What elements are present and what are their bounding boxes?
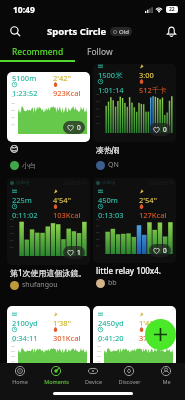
button[interactable]: Device xyxy=(76,366,110,385)
button[interactable]: 2100yd xyxy=(7,306,90,376)
staticText: little relay 100x4. xyxy=(96,265,161,276)
staticText: 1'38" xyxy=(53,318,71,328)
staticText: Follow xyxy=(87,46,113,58)
staticText: 301Kcal xyxy=(53,333,81,343)
staticText: 2100yd xyxy=(12,318,38,328)
staticText: 1:01:14 xyxy=(98,85,124,95)
staticText: 22 xyxy=(169,6,175,13)
staticText: 37 xyxy=(139,333,148,343)
staticText: 10:49 xyxy=(13,4,35,16)
staticText: 2450yd xyxy=(98,318,124,328)
staticText: 2024/03/14 xyxy=(63,180,87,186)
staticText: shufangou xyxy=(22,280,58,290)
staticText: 0 xyxy=(163,246,167,255)
staticText: 1 xyxy=(77,248,81,257)
staticText: 0 xyxy=(163,125,167,134)
button[interactable]: QN xyxy=(96,160,119,170)
button[interactable]: Follow xyxy=(75,42,125,62)
staticText: Sports Circle xyxy=(47,25,107,38)
button[interactable]: Discover xyxy=(112,366,146,385)
button[interactable]: Me xyxy=(149,366,183,385)
staticText: 凑热闹 xyxy=(96,145,120,155)
button[interactable]: Old xyxy=(113,27,129,36)
staticText: 5100m xyxy=(12,73,37,83)
staticText: 第1次使用這個泳鏡。 xyxy=(10,267,87,278)
staticText: 127Kcal xyxy=(139,210,167,220)
button[interactable]: 自由泳 xyxy=(7,178,90,265)
button[interactable]: 0 xyxy=(67,123,81,132)
staticText: 自由泳 xyxy=(102,180,116,186)
button[interactable]: Recommend xyxy=(0,42,75,62)
staticText: Me xyxy=(162,378,171,385)
button[interactable]: 0 xyxy=(153,246,167,255)
button[interactable]: 0 xyxy=(153,125,167,134)
button[interactable]: Moments xyxy=(39,366,73,385)
staticText: 225m xyxy=(12,195,32,205)
staticText: 512千卡 xyxy=(139,85,167,95)
button[interactable]: 2450yd xyxy=(93,306,176,376)
button[interactable]: 1 xyxy=(67,248,81,257)
staticText: 1:23:52 xyxy=(12,88,38,98)
staticText: Old xyxy=(119,28,129,36)
staticText: Home xyxy=(12,378,28,385)
staticText: bb xyxy=(108,278,117,288)
staticText: 2024/03/14 xyxy=(149,180,173,186)
staticText: 1'41" xyxy=(139,318,157,328)
button[interactable]: Home xyxy=(3,366,37,385)
staticText: Moments xyxy=(44,378,69,385)
staticText: 0:41:20 xyxy=(98,333,124,343)
staticText: 2'42" xyxy=(53,73,71,83)
staticText: 0:13:03 xyxy=(98,210,124,220)
staticText: 1500米 xyxy=(98,70,123,80)
button[interactable]: Add post xyxy=(145,319,176,350)
staticText: 103Kcal xyxy=(53,210,81,220)
button[interactable]: Search xyxy=(5,20,25,42)
button[interactable]: bb xyxy=(96,278,117,288)
staticText: Device xyxy=(85,378,102,385)
staticText: 0:11:02 xyxy=(12,210,38,220)
button[interactable]: 1500米 xyxy=(93,64,176,142)
staticText: 😊 xyxy=(10,144,19,154)
button[interactable]: 自由泳 xyxy=(93,178,176,263)
staticText: 3:00 xyxy=(139,70,154,80)
button[interactable]: 小白 xyxy=(10,161,36,170)
staticText: Discover xyxy=(118,378,141,385)
staticText: 4'54" xyxy=(53,195,71,205)
staticText: 0:34:11 xyxy=(12,333,38,343)
button[interactable]: 5100m xyxy=(7,72,90,142)
button[interactable]: shufangou xyxy=(10,280,58,290)
staticText: 450m xyxy=(98,195,118,205)
staticText: 0 xyxy=(77,123,81,132)
staticText: 923Kcal xyxy=(53,88,81,98)
staticText: 自由泳 xyxy=(16,180,30,186)
staticText: Recommend xyxy=(12,46,64,58)
staticText: QN xyxy=(108,160,119,170)
button[interactable]: Notifications xyxy=(161,20,181,42)
staticText: 小白 xyxy=(22,161,36,170)
staticText: 2'54" xyxy=(139,195,157,205)
